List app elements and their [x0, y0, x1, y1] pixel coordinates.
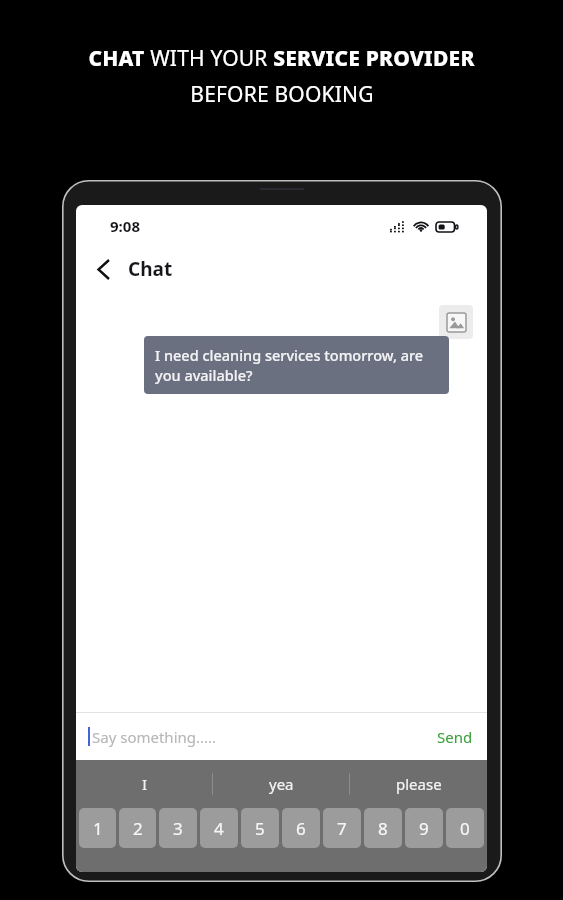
- staticText: BEFORE BOOKING: [190, 80, 374, 109]
- button[interactable]: 7: [323, 808, 361, 848]
- staticText: 9: [419, 817, 429, 840]
- staticText: I need cleaning services tomorrow, are y…: [155, 345, 438, 385]
- staticText: Chat: [128, 256, 173, 282]
- button[interactable]: 8: [364, 808, 402, 848]
- button[interactable]: 9: [405, 808, 443, 848]
- staticText: 6: [296, 817, 306, 840]
- staticText: 3: [173, 817, 183, 840]
- button[interactable]: please: [350, 760, 487, 807]
- button[interactable]: Back: [86, 252, 120, 286]
- button[interactable]: 6: [282, 808, 320, 848]
- staticText: please: [396, 774, 442, 794]
- button[interactable]: 0: [446, 808, 484, 848]
- button[interactable]: Send: [423, 719, 487, 755]
- staticText: 4: [214, 817, 224, 840]
- button[interactable]: yea: [213, 760, 350, 807]
- staticText: 2: [133, 817, 143, 840]
- button[interactable]: I: [76, 760, 213, 807]
- button[interactable]: 1: [79, 808, 116, 848]
- button[interactable]: 5: [241, 808, 279, 848]
- staticText: 8: [378, 817, 388, 840]
- button[interactable]: I need cleaning services tomorrow, are y…: [144, 336, 449, 394]
- button[interactable]: 4: [200, 808, 238, 848]
- staticText: Send: [437, 727, 473, 747]
- staticText: CHAT WITH YOUR SERVICE PROVIDER: [88, 44, 475, 73]
- staticText: 0: [460, 817, 470, 840]
- staticText: I: [142, 774, 148, 794]
- button[interactable]: Say something.....: [76, 713, 487, 760]
- staticText: 7: [337, 817, 347, 840]
- staticText: Say something.....: [92, 727, 217, 747]
- button[interactable]: 2: [119, 808, 156, 848]
- staticText: 5: [255, 817, 265, 840]
- button[interactable]: 3: [159, 808, 197, 848]
- button[interactable]: Image attachment: [439, 305, 473, 339]
- staticText: yea: [269, 774, 294, 794]
- staticText: 9:08: [110, 216, 140, 236]
- staticText: 1: [93, 817, 103, 840]
